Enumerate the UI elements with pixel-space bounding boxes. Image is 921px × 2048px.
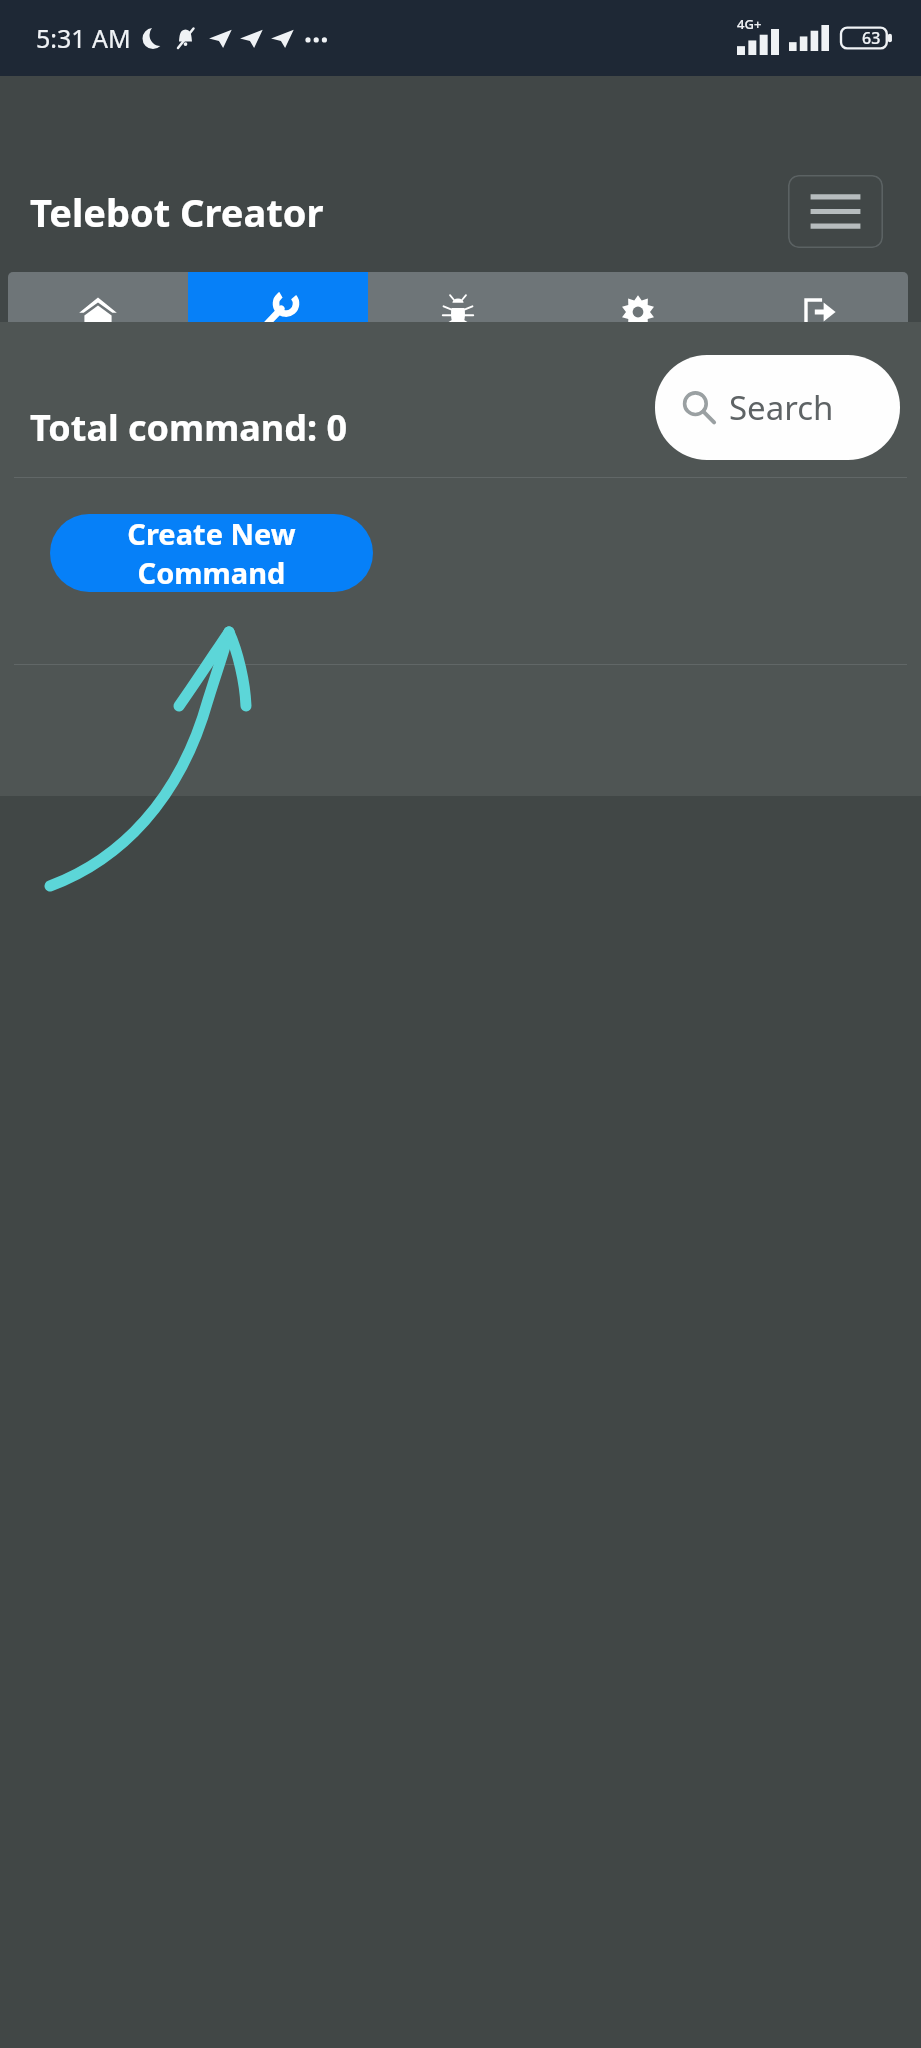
button[interactable]: Home [8, 272, 188, 352]
button[interactable]: Tools [188, 272, 368, 352]
staticText: Total command: 0 [30, 403, 348, 452]
button[interactable]: Search [655, 355, 900, 460]
button[interactable]: Logout [728, 272, 908, 352]
staticText: Create New Command [50, 514, 373, 592]
button[interactable]: Settings [548, 272, 728, 352]
staticText: 63 [862, 27, 881, 49]
staticText: Search [729, 385, 834, 430]
button[interactable]: Open menu [788, 175, 883, 248]
staticText: Telebot Creator [30, 186, 324, 238]
staticText: 4G+ [737, 15, 762, 33]
button[interactable]: Create New Command [50, 514, 373, 592]
staticText: 5:31 AM [36, 21, 131, 55]
button[interactable]: Debug [368, 272, 548, 352]
